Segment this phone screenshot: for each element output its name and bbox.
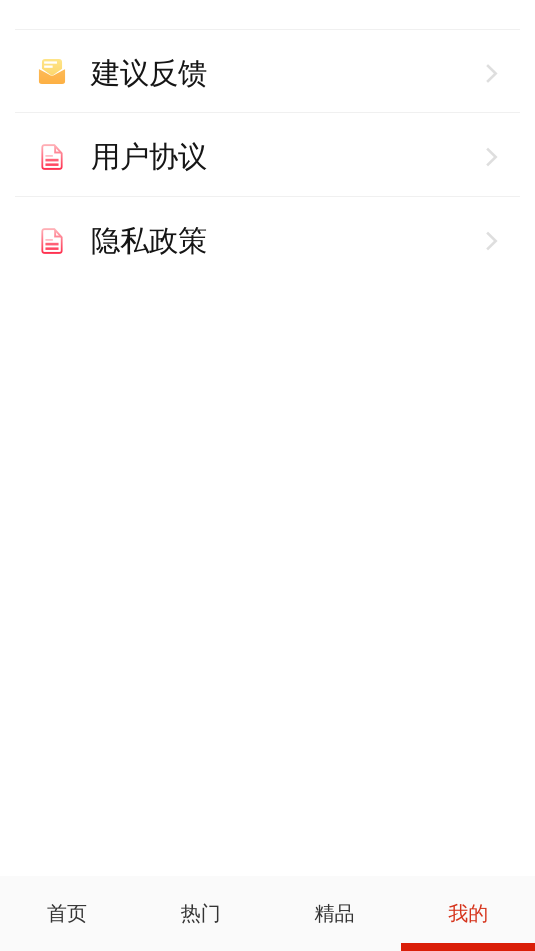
button[interactable]: 精品 [267, 876, 401, 951]
button[interactable]: 隐私政策 [0, 197, 535, 280]
staticText: 首页 [47, 901, 87, 926]
staticText: 建议反馈 [91, 55, 207, 91]
button[interactable]: 建议反馈 [0, 30, 535, 113]
staticText: 用户协议 [91, 139, 207, 175]
button[interactable]: 用户协议 [0, 113, 535, 197]
staticText: 精品 [314, 901, 354, 926]
staticText: 隐私政策 [91, 223, 207, 259]
staticText: 我的 [448, 901, 488, 926]
staticText: 热门 [181, 901, 221, 926]
button[interactable]: 我的 [401, 876, 535, 951]
button[interactable]: 首页 [0, 876, 134, 951]
button[interactable]: 热门 [134, 876, 268, 951]
